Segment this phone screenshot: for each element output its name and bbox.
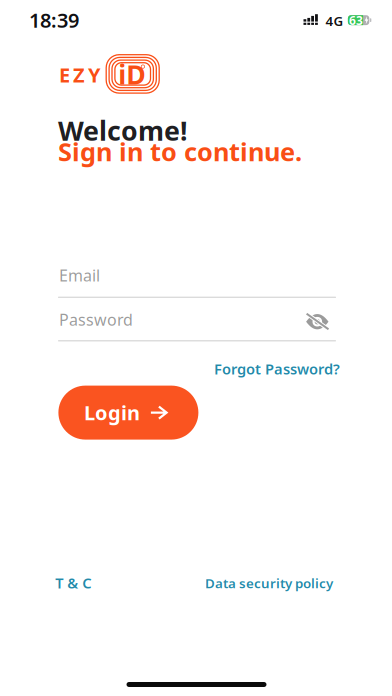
button[interactable]: Forgot Password?: [0, 359, 392, 379]
staticText: Forgot Password?: [214, 359, 340, 379]
button[interactable]: Data security policy: [0, 574, 392, 592]
button[interactable]: Login: [58, 386, 198, 440]
button[interactable]: T & C: [55, 573, 91, 593]
staticText: Email: [59, 265, 100, 286]
button[interactable]: Password: [0, 306, 392, 348]
staticText: 4G: [325, 12, 343, 30]
staticText: Login: [84, 399, 140, 426]
staticText: Data security policy: [205, 574, 333, 592]
staticText: Y: [88, 61, 101, 88]
staticText: 63: [349, 12, 363, 28]
button[interactable]: Email: [0, 263, 392, 305]
staticText: T & C: [55, 573, 91, 593]
staticText: Welcome!: [58, 113, 188, 148]
staticText: E: [59, 61, 70, 88]
staticText: 18:39: [29, 7, 79, 33]
button[interactable]: Show password: [302, 309, 332, 335]
staticText: Password: [59, 309, 133, 330]
staticText: Z: [73, 61, 85, 88]
staticText: iD: [118, 56, 146, 92]
staticText: Sign in to continue.: [58, 134, 302, 168]
